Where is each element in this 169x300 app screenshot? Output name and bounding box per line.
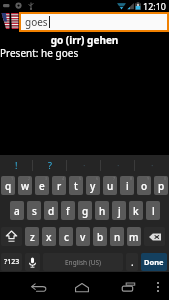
staticText: 6: [96, 176, 99, 181]
staticText: l: [152, 204, 155, 218]
button[interactable]: Voice input: [25, 253, 40, 271]
button[interactable]: p: [154, 176, 168, 195]
staticText: k: [133, 204, 139, 218]
staticText: 2: [28, 176, 31, 181]
staticText: Done: [144, 257, 164, 267]
button[interactable]: !: [0, 155, 33, 175]
button[interactable]: Recent apps: [111, 274, 145, 300]
staticText: v: [80, 230, 86, 244]
button[interactable]: a: [10, 201, 24, 220]
staticText: y: [90, 179, 96, 193]
staticText: n: [114, 230, 121, 244]
button[interactable]: y: [86, 176, 100, 195]
button[interactable]: x: [42, 227, 56, 246]
staticText: z: [30, 230, 35, 244]
staticText: s: [32, 204, 37, 218]
staticText: t: [74, 179, 78, 193]
button[interactable]: g: [78, 201, 92, 220]
staticText: !: [15, 159, 18, 171]
button[interactable]: t: [69, 176, 83, 195]
staticText: 0: [164, 176, 167, 181]
button[interactable]: n: [110, 227, 124, 246]
button[interactable]: w: [18, 176, 32, 195]
staticText: ·: [151, 159, 154, 171]
staticText: 12:10: [143, 0, 167, 12]
button[interactable]: q: [1, 176, 15, 195]
staticText: g: [82, 204, 89, 218]
staticText: h: [99, 204, 106, 218]
staticText: ·: [117, 159, 120, 171]
staticText: 5: [79, 176, 82, 181]
button[interactable]: k: [129, 201, 143, 220]
button[interactable]: d: [44, 201, 58, 220]
staticText: 8: [130, 176, 133, 181]
button[interactable]: i: [120, 176, 134, 195]
staticText: b: [97, 230, 104, 244]
button[interactable]: f: [61, 201, 75, 220]
staticText: ·: [83, 159, 86, 171]
button[interactable]: Done: [141, 253, 167, 271]
staticText: j: [118, 204, 121, 218]
button[interactable]: c: [59, 227, 73, 246]
staticText: Present: he goes: [0, 46, 79, 60]
staticText: 1: [11, 176, 14, 181]
button[interactable]: Home: [65, 274, 99, 300]
staticText: English (US): [65, 258, 102, 267]
button[interactable]: ?: [33, 155, 67, 175]
button[interactable]: u: [103, 176, 117, 195]
staticText: q: [5, 179, 12, 193]
staticText: m: [129, 230, 139, 244]
button[interactable]: v: [76, 227, 90, 246]
staticText: x: [46, 230, 52, 244]
button[interactable]: l: [146, 201, 160, 220]
staticText: r: [57, 179, 62, 193]
staticText: o: [141, 179, 148, 193]
staticText: c: [64, 230, 69, 244]
button[interactable]: b: [93, 227, 107, 246]
button[interactable]: Backspace: [144, 227, 165, 246]
staticText: 3: [45, 176, 48, 181]
button[interactable]: .: [126, 253, 138, 271]
button[interactable]: Change language: [1, 12, 19, 30]
button[interactable]: More options: [147, 274, 169, 300]
staticText: d: [48, 204, 55, 218]
staticText: .: [131, 255, 134, 269]
staticText: f: [66, 204, 70, 218]
button[interactable]: s: [27, 201, 41, 220]
button[interactable]: r: [52, 176, 66, 195]
button[interactable]: English (US): [43, 253, 123, 271]
button[interactable]: Back: [22, 274, 56, 300]
button[interactable]: Shift: [1, 227, 22, 246]
staticText: 9: [147, 176, 150, 181]
staticText: 7: [113, 176, 116, 181]
staticText: a: [14, 204, 20, 218]
staticText: e: [39, 179, 45, 193]
staticText: u: [107, 179, 114, 193]
button[interactable]: ?123: [1, 253, 22, 271]
staticText: ?: [48, 159, 52, 171]
staticText: goes: [25, 15, 48, 29]
button[interactable]: h: [95, 201, 109, 220]
button[interactable]: j: [112, 201, 126, 220]
button[interactable]: e: [35, 176, 49, 195]
button[interactable]: goes: [21, 14, 167, 30]
button[interactable]: ·: [101, 155, 135, 175]
staticText: 4: [62, 176, 65, 181]
staticText: ?123: [4, 257, 20, 267]
button[interactable]: z: [25, 227, 39, 246]
staticText: i: [126, 179, 129, 193]
button[interactable]: o: [137, 176, 151, 195]
staticText: p: [158, 179, 165, 193]
button[interactable]: m: [127, 227, 141, 246]
staticText: go (irr) gehen: [0, 33, 169, 47]
staticText: w: [21, 179, 30, 193]
button[interactable]: ·: [67, 155, 101, 175]
